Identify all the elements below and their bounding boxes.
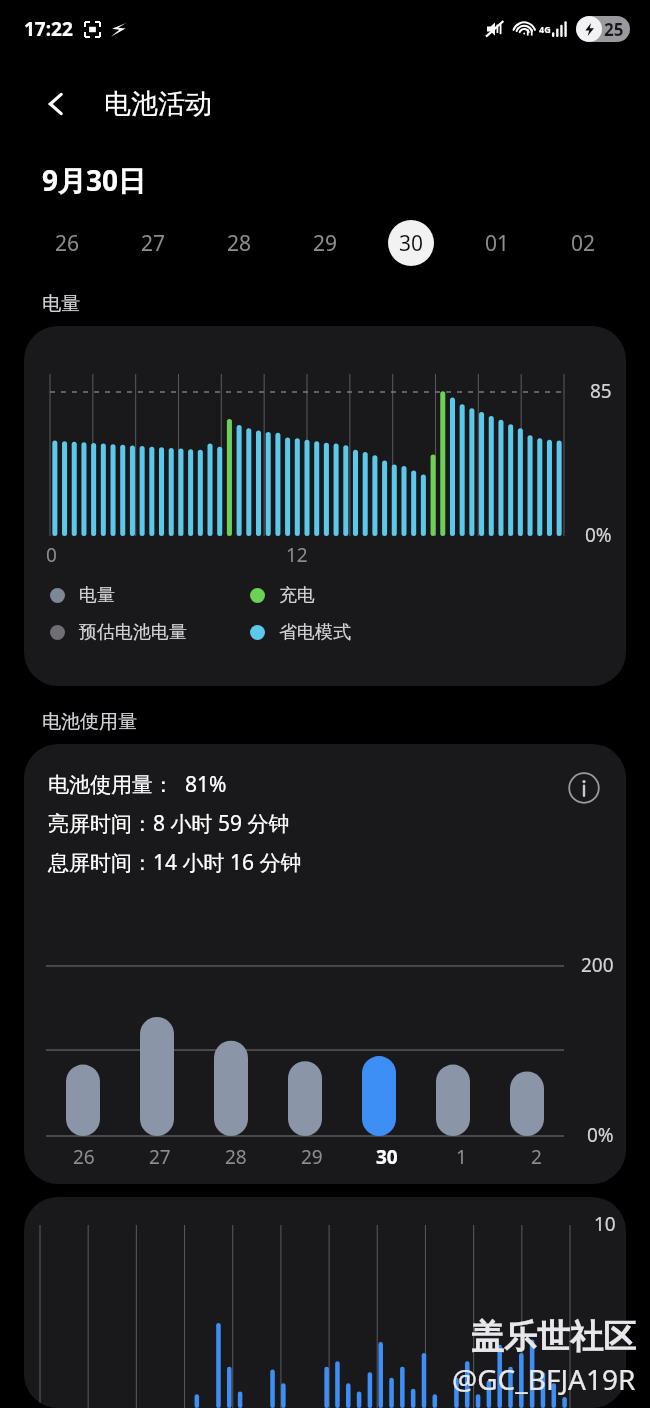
button[interactable]: 01 xyxy=(454,210,540,276)
button[interactable]: 02 xyxy=(540,210,626,276)
staticText: 省电模式 xyxy=(279,621,351,644)
staticText: 1 xyxy=(456,1144,467,1170)
button[interactable]: 电池使用量： 81% xyxy=(24,744,626,1184)
button[interactable]: Info xyxy=(562,766,606,810)
staticText: 预估电池电量 xyxy=(79,621,187,644)
staticText: 25 xyxy=(604,18,624,41)
staticText: 10 xyxy=(594,1211,616,1237)
staticText: 9月30日 xyxy=(42,161,147,199)
staticText: 28 xyxy=(225,1144,247,1170)
button[interactable]: 10 xyxy=(24,1197,626,1408)
staticText: 17:22 xyxy=(24,16,73,42)
staticText: 充电 xyxy=(279,584,315,607)
staticText: 0% xyxy=(585,522,612,548)
staticText: 200 xyxy=(581,952,614,978)
staticText: 27 xyxy=(149,1144,171,1170)
staticText: 电量 xyxy=(42,292,80,316)
staticText: 亮屏时间：8 小时 59 分钟 xyxy=(48,809,290,838)
staticText: 电池使用量： 81% xyxy=(48,770,227,799)
staticText: 85 xyxy=(590,378,612,404)
staticText: 电池使用量 xyxy=(42,710,137,734)
staticText: 01 xyxy=(485,229,510,258)
staticText: 29 xyxy=(301,1144,323,1170)
staticText: @GC_BFJA19R xyxy=(452,1360,636,1398)
button[interactable]: 27 xyxy=(110,210,196,276)
staticText: 12 xyxy=(286,542,308,568)
button[interactable]: 30 xyxy=(368,210,454,276)
button[interactable]: 29 xyxy=(282,210,368,276)
staticText: 电池活动 xyxy=(104,87,212,121)
button[interactable]: Back xyxy=(34,82,78,126)
staticText: 4G xyxy=(539,23,551,35)
staticText: 30 xyxy=(399,229,424,258)
staticText: 电量 xyxy=(79,584,115,607)
staticText: 26 xyxy=(73,1144,95,1170)
staticText: 28 xyxy=(227,229,252,258)
button[interactable]: 28 xyxy=(196,210,282,276)
staticText: 0 xyxy=(46,542,57,568)
staticText: 26 xyxy=(55,229,80,258)
button[interactable]: 26 xyxy=(24,210,110,276)
staticText: 27 xyxy=(141,229,166,258)
staticText: 2 xyxy=(531,1144,542,1170)
staticText: 29 xyxy=(313,229,338,258)
staticText: 30 xyxy=(376,1144,398,1170)
staticText: 盖乐世社区 xyxy=(471,1316,636,1358)
staticText: 02 xyxy=(571,229,596,258)
button[interactable]: 85 xyxy=(24,326,626,686)
staticText: 0% xyxy=(587,1122,614,1148)
staticText: 息屏时间：14 小时 16 分钟 xyxy=(48,848,302,877)
